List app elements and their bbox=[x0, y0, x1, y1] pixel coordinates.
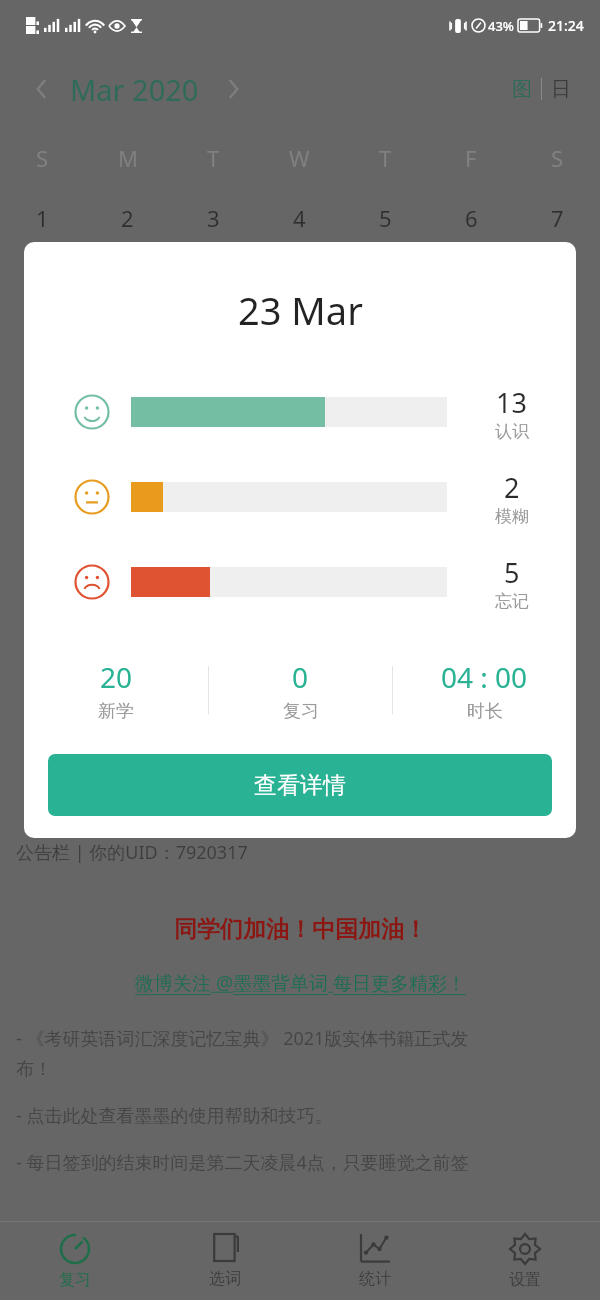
button[interactable]: 查看详情 bbox=[48, 754, 552, 816]
staticText: T bbox=[207, 143, 220, 173]
staticText: 设置 bbox=[509, 1270, 541, 1290]
button[interactable]: 统计 bbox=[300, 1222, 450, 1300]
staticText: S bbox=[551, 143, 564, 173]
button[interactable]: 微博关注 @墨墨背单词 每日更多精彩！ bbox=[135, 970, 466, 996]
staticText: - 《考研英语词汇深度记忆宝典》 2021版实体书籍正式发 布！ bbox=[16, 1026, 469, 1081]
staticText: 7 bbox=[551, 203, 564, 233]
staticText: 4 bbox=[293, 203, 306, 233]
staticText: 20 bbox=[100, 658, 133, 696]
staticText: 日 bbox=[551, 77, 571, 102]
staticText: 图 bbox=[512, 77, 532, 102]
staticText: 新学 bbox=[98, 700, 134, 723]
staticText: 2 bbox=[121, 203, 134, 233]
staticText: 1 bbox=[36, 203, 49, 233]
button[interactable]: Chart view bbox=[503, 70, 541, 108]
button[interactable]: 设置 bbox=[450, 1222, 600, 1300]
button[interactable]: Next month bbox=[213, 69, 253, 109]
staticText: S bbox=[36, 143, 49, 173]
staticText: 2 bbox=[504, 469, 520, 506]
staticText: 21:24 bbox=[548, 16, 584, 35]
staticText: 忘记 bbox=[495, 591, 529, 610]
staticText: 6 bbox=[465, 203, 478, 233]
staticText: F bbox=[465, 143, 477, 173]
button[interactable]: - 点击此处查看墨墨的使用帮助和技巧。 bbox=[16, 1103, 333, 1128]
staticText: Mar 2020 bbox=[70, 70, 199, 109]
staticText: 模糊 bbox=[495, 506, 529, 525]
button[interactable]: Previous month bbox=[22, 69, 62, 109]
staticText: 13 bbox=[496, 384, 527, 421]
staticText: 同学们加油！中国加油！ bbox=[174, 915, 427, 944]
staticText: 04 : 00 bbox=[441, 658, 528, 696]
staticText: 0 bbox=[292, 658, 309, 696]
staticText: 23 Mar bbox=[238, 284, 363, 336]
staticText: 复习 bbox=[59, 1270, 91, 1290]
staticText: 公告栏 | 你的UID：7920317 bbox=[16, 840, 248, 865]
staticText: 认识 bbox=[495, 421, 529, 440]
button[interactable]: 选词 bbox=[150, 1222, 300, 1300]
staticText: 时长 bbox=[467, 700, 503, 723]
staticText: 5 bbox=[379, 203, 392, 233]
button[interactable]: Calendar view bbox=[542, 70, 580, 108]
staticText: W bbox=[289, 143, 310, 173]
staticText: 43% bbox=[488, 17, 514, 35]
staticText: M bbox=[118, 143, 138, 173]
staticText: 查看详情 bbox=[254, 771, 346, 800]
staticText: T bbox=[379, 143, 392, 173]
button[interactable]: 复习 bbox=[0, 1222, 150, 1300]
staticText: - 每日签到的结束时间是第二天凌晨4点，只要睡觉之前签 bbox=[16, 1150, 469, 1175]
staticText: 选词 bbox=[209, 1269, 241, 1289]
staticText: 5 bbox=[504, 554, 520, 591]
staticText: 复习 bbox=[283, 700, 319, 723]
staticText: 统计 bbox=[359, 1269, 391, 1289]
staticText: 3 bbox=[207, 203, 220, 233]
